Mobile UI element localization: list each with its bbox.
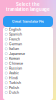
button[interactable]: Russian — [3, 66, 53, 71]
button[interactable]: Hindi — [3, 75, 53, 80]
staticText: Dutch — [9, 90, 19, 95]
staticText: translation language — [6, 7, 50, 12]
button[interactable]: Chinese — [3, 61, 53, 66]
button[interactable]: Turkish — [3, 80, 53, 85]
button[interactable]: Spanish — [3, 32, 53, 37]
button[interactable]: Japanese — [3, 51, 53, 56]
staticText: Great Translator Pro — [12, 19, 44, 24]
staticText: English — [9, 27, 21, 31]
staticText: Chinese — [9, 61, 23, 65]
button[interactable]: Korean — [3, 56, 53, 61]
staticText: Korean — [9, 56, 20, 61]
staticText: Hindi — [9, 76, 18, 80]
button[interactable]: Polish — [3, 85, 53, 90]
staticText: Japanese — [9, 52, 25, 56]
button[interactable]: Dutch — [3, 90, 53, 95]
staticText: Select the — [16, 2, 40, 7]
staticText: German — [9, 42, 22, 46]
staticText: Russian — [9, 66, 22, 70]
staticText: French — [9, 37, 20, 41]
staticText: Spanish — [9, 32, 22, 36]
staticText: Turkish — [9, 81, 21, 85]
button[interactable]: French — [3, 37, 53, 41]
staticText: Arabic — [9, 71, 19, 75]
button[interactable]: Italian — [3, 46, 53, 51]
staticText: Polish — [9, 85, 19, 90]
button[interactable]: Arabic — [3, 71, 53, 75]
button[interactable]: German — [3, 41, 53, 46]
button[interactable]: English — [3, 27, 53, 32]
button[interactable]: Great Translator Pro — [3, 16, 53, 27]
staticText: Italian — [9, 47, 19, 51]
